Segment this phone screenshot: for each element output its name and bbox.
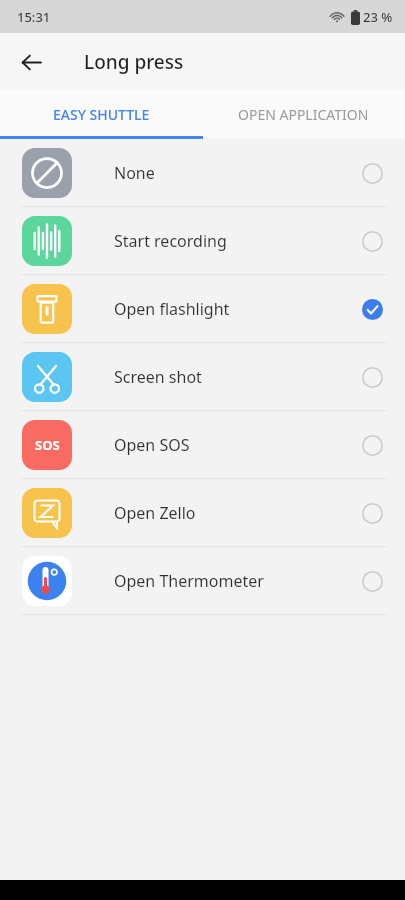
button[interactable]: Start recording	[0, 207, 405, 275]
staticText: Open Zello	[114, 502, 362, 524]
staticText: Open Thermometer	[114, 570, 362, 592]
staticText: SOS	[35, 436, 60, 454]
button[interactable]: Open flashlight	[0, 275, 405, 343]
staticText: Open flashlight	[114, 298, 362, 320]
button[interactable]: Back	[10, 41, 52, 83]
staticText: Start recording	[114, 230, 362, 252]
button[interactable]: None	[0, 139, 405, 207]
staticText: Open SOS	[114, 434, 362, 456]
button[interactable]: Open Thermometer	[0, 547, 405, 615]
staticText: 23 %	[363, 8, 393, 26]
staticText: OPEN APPLICATION	[238, 105, 369, 124]
button[interactable]: OPEN APPLICATION	[202, 90, 405, 139]
staticText: Long press	[84, 49, 184, 75]
button[interactable]: Open Zello	[0, 479, 405, 547]
button[interactable]: EASY SHUTTLE	[0, 90, 202, 139]
staticText: None	[114, 162, 362, 184]
staticText: Screen shot	[114, 366, 362, 388]
staticText: 15:31	[17, 8, 51, 26]
button[interactable]: Screen shot	[0, 343, 405, 411]
staticText: EASY SHUTTLE	[53, 105, 150, 124]
button[interactable]: SOS	[0, 411, 405, 479]
